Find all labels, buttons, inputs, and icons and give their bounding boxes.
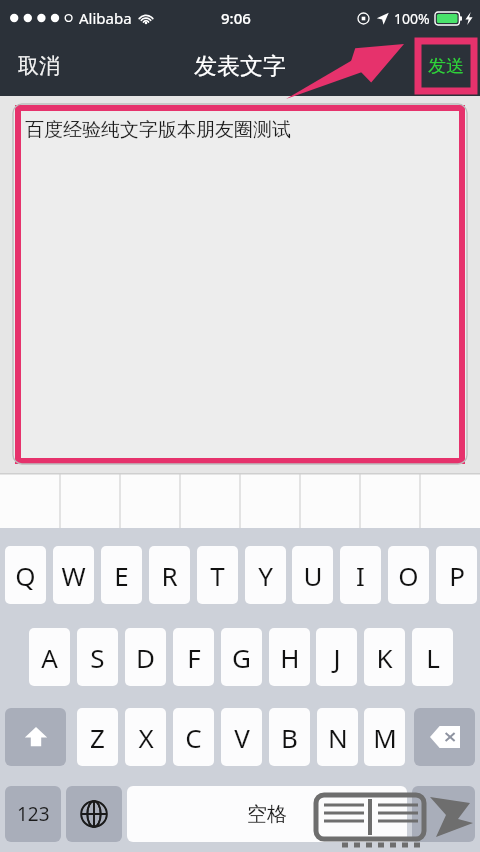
button[interactable]: Z [77, 708, 118, 766]
staticText: C [185, 720, 202, 755]
button[interactable]: H [269, 628, 310, 686]
button[interactable]: Delete [414, 708, 475, 766]
staticText: L [426, 640, 440, 675]
staticText: B [281, 720, 298, 755]
button[interactable]: W [53, 546, 94, 604]
button[interactable]: D [125, 628, 166, 686]
staticText: T [210, 558, 225, 593]
staticText: Alibaba [79, 8, 132, 28]
staticText: V [234, 720, 250, 755]
button[interactable]: Switch keyboard [66, 786, 122, 842]
button[interactable]: L [412, 628, 453, 686]
staticText: S [90, 640, 105, 675]
button[interactable]: J [316, 628, 357, 686]
button[interactable]: M [364, 708, 405, 766]
staticText: 百度经验纯文字版本朋友圈测试 [25, 118, 291, 142]
button[interactable]: Return [412, 786, 475, 842]
staticText: X [138, 720, 154, 755]
staticText: I [356, 558, 365, 593]
button[interactable]: 空格 [127, 786, 407, 842]
button[interactable]: V [221, 708, 262, 766]
button[interactable]: Y [245, 546, 286, 604]
button[interactable]: I [340, 546, 381, 604]
staticText: W [61, 558, 86, 593]
staticText: 123 [17, 801, 50, 827]
staticText: J [333, 640, 341, 675]
button[interactable]: U [292, 546, 333, 604]
staticText: O [398, 558, 419, 593]
button[interactable]: A [29, 628, 70, 686]
staticText: Y [258, 558, 273, 593]
button[interactable]: Q [5, 546, 46, 604]
button[interactable]: 取消 [8, 47, 70, 85]
button[interactable]: 发送 [418, 41, 474, 91]
staticText: 发表文字 [194, 52, 286, 81]
staticText: F [187, 640, 201, 675]
button[interactable]: X [125, 708, 166, 766]
button[interactable]: N [317, 708, 358, 766]
staticText: M [373, 720, 397, 755]
button[interactable]: Numbers [5, 786, 61, 842]
staticText: 空格 [247, 802, 287, 827]
staticText: U [303, 558, 323, 593]
button[interactable]: E [101, 546, 142, 604]
button[interactable]: F [173, 628, 214, 686]
button[interactable]: Shift [5, 708, 66, 766]
button[interactable]: K [364, 628, 405, 686]
button[interactable]: G [221, 628, 262, 686]
staticText: 100% [394, 9, 430, 28]
staticText: R [161, 558, 178, 593]
staticText: E [114, 558, 129, 593]
button[interactable]: R [149, 546, 190, 604]
button[interactable]: 百度经验纯文字版本朋友圈测试 [13, 104, 467, 464]
button[interactable]: P [436, 546, 477, 604]
button[interactable]: O [388, 546, 429, 604]
staticText: 取消 [18, 53, 60, 79]
staticText: P [449, 558, 465, 593]
button[interactable]: C [173, 708, 214, 766]
button[interactable]: B [269, 708, 310, 766]
staticText: Z [90, 720, 105, 755]
staticText: Q [15, 558, 36, 593]
button[interactable]: T [197, 546, 238, 604]
staticText: 9:06 [221, 8, 251, 28]
staticText: 发送 [428, 55, 464, 78]
staticText: D [136, 640, 155, 675]
button[interactable]: S [77, 628, 118, 686]
staticText: K [376, 640, 393, 675]
staticText: A [41, 640, 58, 675]
staticText: G [232, 640, 251, 675]
staticText: N [328, 720, 348, 755]
staticText: H [280, 640, 300, 675]
